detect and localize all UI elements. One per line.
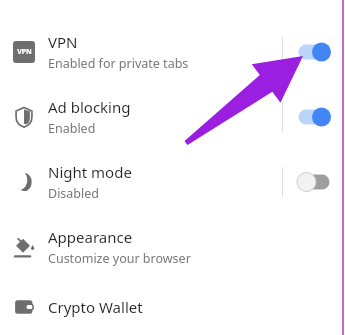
staticText: VPN — [17, 47, 32, 57]
staticText: Customize your browser — [48, 250, 191, 267]
button[interactable]: Crypto Wallet — [0, 279, 345, 335]
staticText: Night mode — [48, 162, 132, 182]
button[interactable]: Appearance — [0, 214, 345, 279]
staticText: Enabled for private tabs — [48, 55, 189, 72]
button[interactable]: Toggle VPN — [283, 32, 345, 72]
staticText: Disabled — [48, 185, 100, 202]
button[interactable]: Ad blocking — [0, 84, 345, 149]
button[interactable]: Toggle Ad blocking — [283, 97, 345, 137]
button[interactable]: Night mode — [0, 149, 345, 214]
staticText: Appearance — [48, 227, 133, 247]
staticText: Enabled — [48, 120, 96, 137]
button[interactable]: VPN — [0, 19, 345, 84]
staticText: Ad blocking — [48, 97, 131, 117]
staticText: VPN — [48, 32, 78, 52]
button[interactable]: Toggle Night mode — [283, 162, 345, 202]
staticText: Crypto Wallet — [48, 297, 143, 317]
